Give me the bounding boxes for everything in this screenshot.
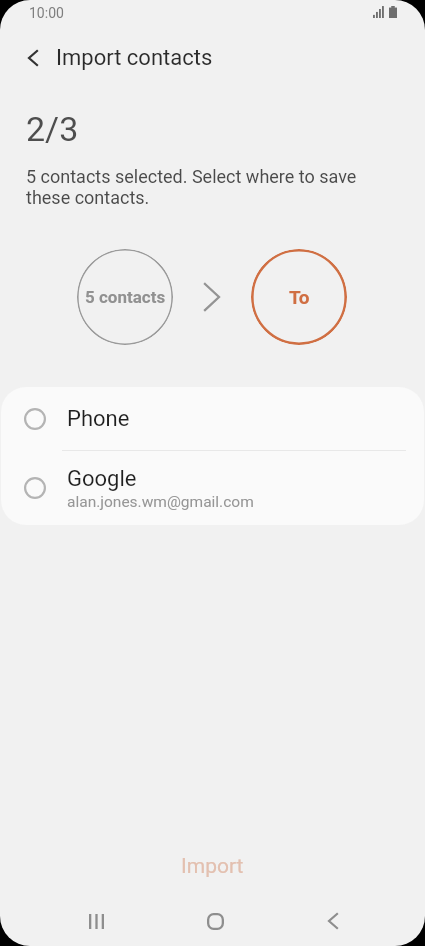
- staticText: 2/3: [26, 109, 79, 149]
- button[interactable]: Phone: [1, 387, 424, 450]
- staticText: Google: [67, 466, 137, 492]
- button[interactable]: Import: [0, 842, 425, 890]
- staticText: Import contacts: [56, 45, 213, 71]
- staticText: 5 contacts selected. Select where to sav…: [26, 166, 380, 208]
- button[interactable]: Navigate up: [7, 32, 59, 84]
- button[interactable]: To: [251, 249, 347, 345]
- staticText: alan.jones.wm@gmail.com: [67, 493, 254, 511]
- staticText: Phone: [67, 406, 130, 432]
- button[interactable]: Back: [309, 897, 357, 945]
- staticText: 5 contacts: [85, 287, 166, 307]
- staticText: To: [289, 286, 310, 308]
- staticText: 10:00: [29, 5, 64, 21]
- button[interactable]: Home: [191, 897, 239, 945]
- button[interactable]: Google: [1, 451, 424, 525]
- button[interactable]: 5 contacts: [77, 249, 173, 345]
- staticText: Import: [181, 854, 244, 879]
- button[interactable]: Recent apps: [72, 897, 120, 945]
